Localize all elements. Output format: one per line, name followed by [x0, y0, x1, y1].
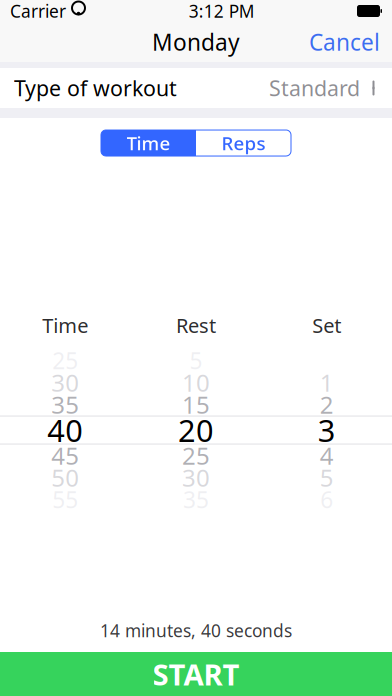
- staticText: 1: [320, 367, 334, 398]
- staticText: START: [152, 654, 239, 693]
- staticText: 45: [51, 440, 79, 471]
- button[interactable]: Time: [101, 130, 196, 156]
- button[interactable]: Type of workout: [0, 68, 392, 108]
- staticText: 15: [182, 389, 210, 420]
- button[interactable]: START: [0, 652, 392, 696]
- staticText: 30: [51, 367, 79, 398]
- staticText: 25: [182, 440, 210, 471]
- staticText: Standard: [269, 74, 360, 102]
- staticText: Rest: [176, 312, 216, 339]
- staticText: 35: [51, 389, 79, 420]
- staticText: 50: [51, 462, 79, 493]
- staticText: 5: [189, 345, 202, 376]
- staticText: Time: [42, 312, 88, 339]
- button[interactable]: Cancel: [297, 19, 392, 65]
- staticText: Carrier: [10, 0, 66, 22]
- button[interactable]: Reps: [196, 130, 291, 156]
- staticText: 14 minutes, 40 seconds: [100, 619, 292, 642]
- staticText: 5: [320, 462, 334, 493]
- staticText: 25: [52, 345, 78, 376]
- staticText: 3: [318, 410, 336, 450]
- staticText: 20: [178, 410, 214, 450]
- staticText: 10: [182, 367, 210, 398]
- staticText: 55: [52, 484, 78, 515]
- staticText: 30: [182, 462, 210, 493]
- staticText: 35: [183, 484, 209, 515]
- staticText: Reps: [221, 131, 265, 155]
- staticText: 4: [320, 440, 334, 471]
- staticText: Time: [126, 131, 170, 155]
- staticText: Monday: [152, 27, 240, 57]
- staticText: Type of workout: [14, 74, 177, 102]
- staticText: Set: [312, 312, 341, 339]
- staticText: 6: [320, 484, 333, 515]
- staticText: 2: [320, 389, 334, 420]
- staticText: 40: [47, 410, 83, 450]
- staticText: Cancel: [309, 27, 380, 57]
- staticText: 3:12 PM: [189, 0, 255, 22]
